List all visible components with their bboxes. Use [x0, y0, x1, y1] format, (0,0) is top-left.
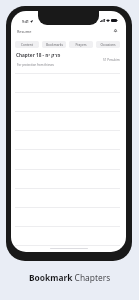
button[interactable]: Occasions [96, 41, 120, 48]
button[interactable] [11, 226, 126, 245]
staticText: For protection from thieves [17, 63, 54, 67]
button[interactable] [11, 245, 126, 252]
staticText: Bookmark Chapters [29, 272, 111, 283]
button[interactable] [11, 92, 126, 111]
button[interactable] [11, 207, 126, 226]
button[interactable]: Bookmarks [42, 41, 66, 48]
button[interactable] [11, 188, 126, 207]
button[interactable] [11, 130, 126, 149]
staticText: 9:41 [22, 19, 29, 24]
staticText: 51 Pesukim [103, 58, 120, 62]
button[interactable] [11, 73, 126, 92]
staticText: Chapter 18 - פרק יח [16, 52, 61, 58]
button[interactable]: Notifications [111, 26, 120, 35]
button[interactable] [11, 169, 126, 188]
button[interactable]: Prayers [69, 41, 93, 48]
button[interactable] [11, 149, 126, 168]
button[interactable]: Content [15, 41, 39, 48]
staticText: Occasions [100, 43, 116, 47]
button[interactable]: Resume [17, 29, 32, 34]
button[interactable] [11, 111, 126, 130]
staticText: Bookmarks [46, 43, 63, 47]
staticText: Prayers [75, 43, 87, 47]
staticText: Content [21, 43, 33, 47]
